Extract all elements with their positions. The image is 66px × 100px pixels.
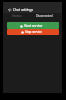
- staticText: Disconnected: [36, 14, 53, 18]
- staticText: Status: [12, 13, 22, 18]
- staticText: Chat settings: [13, 8, 34, 12]
- button[interactable]: Back: [7, 7, 12, 12]
- button[interactable]: Start service: [7, 22, 59, 29]
- staticText: Start service: [24, 24, 43, 28]
- staticText: Stop service: [25, 30, 42, 34]
- button[interactable]: Stop service: [7, 29, 59, 35]
